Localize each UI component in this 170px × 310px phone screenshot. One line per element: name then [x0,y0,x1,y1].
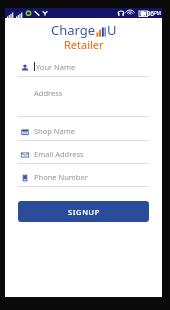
staticText: SIGNUP [68,207,100,217]
button[interactable]: Your Name [18,60,149,77]
button[interactable]: Phone Number [18,170,149,187]
staticText: 5:06 [141,9,154,18]
staticText: Your Name [36,62,76,72]
button[interactable]: Address [18,86,149,117]
button[interactable]: Shop Name [18,124,149,141]
staticText: Retailer [64,37,104,52]
staticText: U [107,21,117,39]
staticText: PM [154,10,161,16]
button[interactable]: SIGNUP [18,201,149,222]
staticText: Email Address [34,149,84,159]
staticText: Address [34,88,63,98]
staticText: Charge [51,21,96,39]
staticText: Phone Number [34,172,88,182]
button[interactable]: Email Address [18,147,149,164]
staticText: Shop Name [34,126,76,136]
